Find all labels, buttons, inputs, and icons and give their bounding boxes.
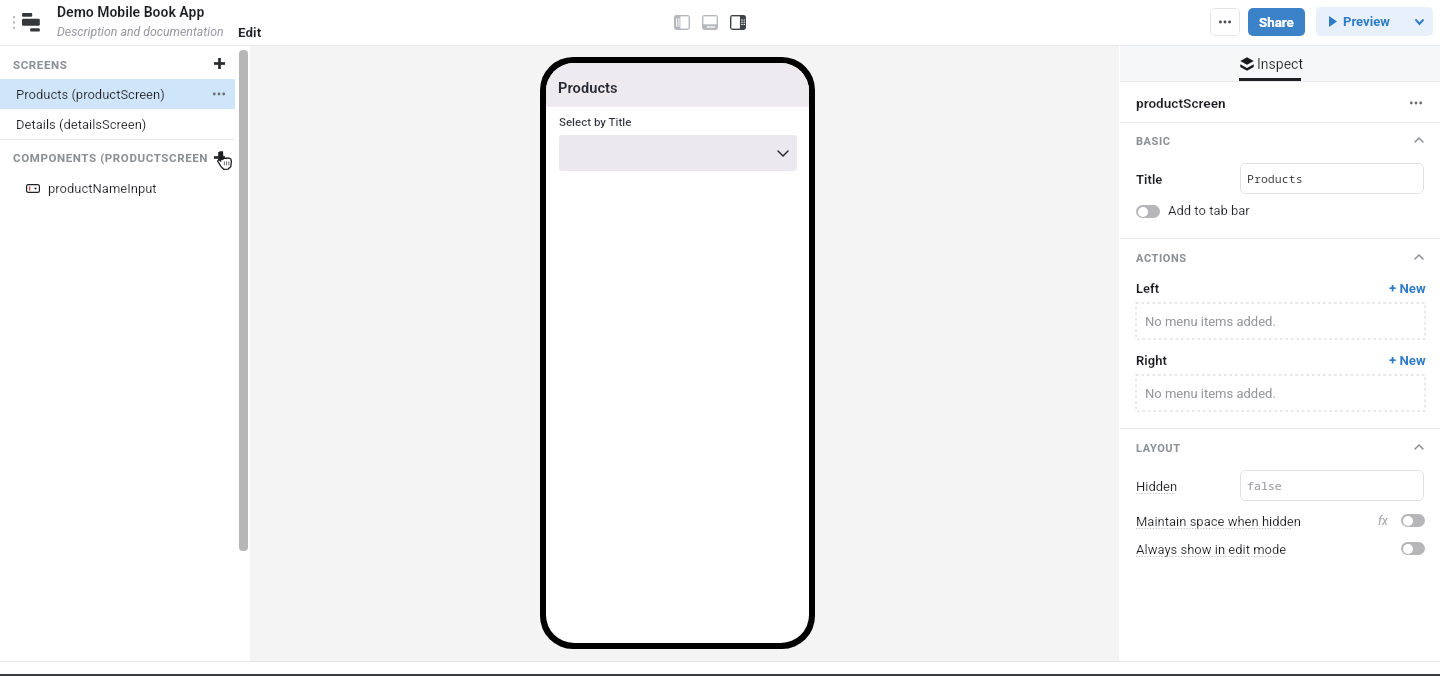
staticText: Add to tab bar [1168,203,1250,218]
staticText: Details (detailsScreen) [16,117,147,132]
staticText: + New [1389,353,1426,368]
staticText: fx [1378,514,1388,528]
staticText: COMPONENTS (PRODUCTSCREEN [13,151,209,164]
button[interactable]: Share [1248,8,1305,36]
button[interactable]: Products (productScreen) [0,79,235,109]
button[interactable]: Inspect [1239,46,1304,81]
button[interactable]: Maintain space when hidden toggle [1401,514,1425,527]
button[interactable]: Edit [237,24,263,40]
staticText: Products (productScreen) [16,87,165,102]
staticText: Maintain space when hidden [1136,514,1301,529]
staticText: Left [1136,281,1160,296]
staticText: Share [1259,15,1294,31]
button[interactable]: BASIC [1120,134,1440,149]
staticText: Select by Title [559,115,632,128]
button[interactable]: false [1240,470,1424,501]
button[interactable]: Add screen [209,53,229,73]
button[interactable]: + New [1389,353,1426,368]
staticText: Demo Mobile Book App [57,4,205,20]
button[interactable]: Show left panel [673,13,691,31]
button[interactable]: productNameInput [0,174,235,203]
button[interactable]: More options [1210,8,1240,36]
button[interactable]: Add to tab bar toggle [1136,205,1160,218]
button[interactable]: Component menu [1406,93,1426,113]
button[interactable]: Preview options [1405,7,1433,36]
staticText: ACTIONS [1136,252,1187,265]
staticText: No menu items added. [1145,314,1276,329]
staticText: Preview [1343,14,1390,29]
staticText: Products [558,79,618,96]
staticText: SCREENS [13,58,68,71]
staticText: Title [1136,172,1163,187]
staticText: Edit [238,24,262,40]
button[interactable]: No menu items added. [1136,375,1425,411]
button[interactable]: No menu items added. [1136,303,1425,339]
button[interactable]: Show right panel [729,13,747,31]
button[interactable]: ACTIONS [1120,251,1440,266]
staticText: No menu items added. [1145,386,1276,401]
staticText: false [1247,478,1282,494]
staticText: BASIC [1136,135,1171,148]
button[interactable]: Add component [209,147,229,167]
button[interactable]: + New [1389,281,1426,296]
staticText: productScreen [1136,95,1226,111]
button[interactable]: Preview [1316,7,1400,36]
staticText: Right [1136,353,1167,368]
button[interactable]: Screen options [209,84,229,104]
staticText: LAYOUT [1136,442,1181,455]
button[interactable]: Products [1240,163,1424,194]
button[interactable]: LAYOUT [1120,441,1440,456]
staticText: Always show in edit mode [1136,542,1287,557]
button[interactable] [559,135,797,171]
staticText: productNameInput [48,181,157,196]
staticText: Inspect [1257,56,1303,72]
button[interactable]: Show bottom panel [701,13,719,31]
staticText: Products [1247,171,1303,187]
button[interactable]: Always show in edit mode toggle [1401,542,1425,555]
staticText: Description and documentation [57,25,224,39]
staticText: + New [1389,281,1426,296]
staticText: Hidden [1136,479,1178,494]
button[interactable]: Details (detailsScreen) [0,110,235,139]
